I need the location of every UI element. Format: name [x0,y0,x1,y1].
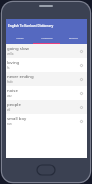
button[interactable]: Favorite [77,75,85,83]
staticText: never ending [7,73,34,79]
staticText: ssn [7,122,12,126]
staticText: ztl [7,108,11,112]
button[interactable]: loving [6,58,87,72]
staticText: HOME [16,36,24,39]
staticText: English To Konkani Dictionary [8,24,54,28]
staticText: small boy [7,115,27,121]
staticText: loving [7,59,20,65]
button[interactable]: FAVORITE [33,33,60,44]
button[interactable]: going slow [6,44,87,58]
staticText: fs [7,66,10,70]
button[interactable]: people [6,100,87,114]
staticText: RECENT [69,36,78,39]
staticText: noise [7,87,18,93]
button[interactable]: small boy [6,114,87,128]
button[interactable]: noise [6,86,87,100]
button[interactable]: Favorite [77,61,85,69]
button[interactable]: RECENT [60,33,87,44]
button[interactable]: Favorite [77,47,85,55]
button[interactable]: Favorite [77,89,85,97]
staticText: vella [7,52,14,56]
button[interactable]: Favorite [77,103,85,111]
button[interactable]: HOME [6,33,33,44]
staticText: fsdv [7,80,13,84]
staticText: FAVORITE [41,36,53,39]
staticText: vaz [7,94,12,98]
staticText: going slow [7,45,29,51]
staticText: people [7,101,21,107]
button[interactable]: never ending [6,72,87,86]
button[interactable]: Favorite [77,117,85,125]
